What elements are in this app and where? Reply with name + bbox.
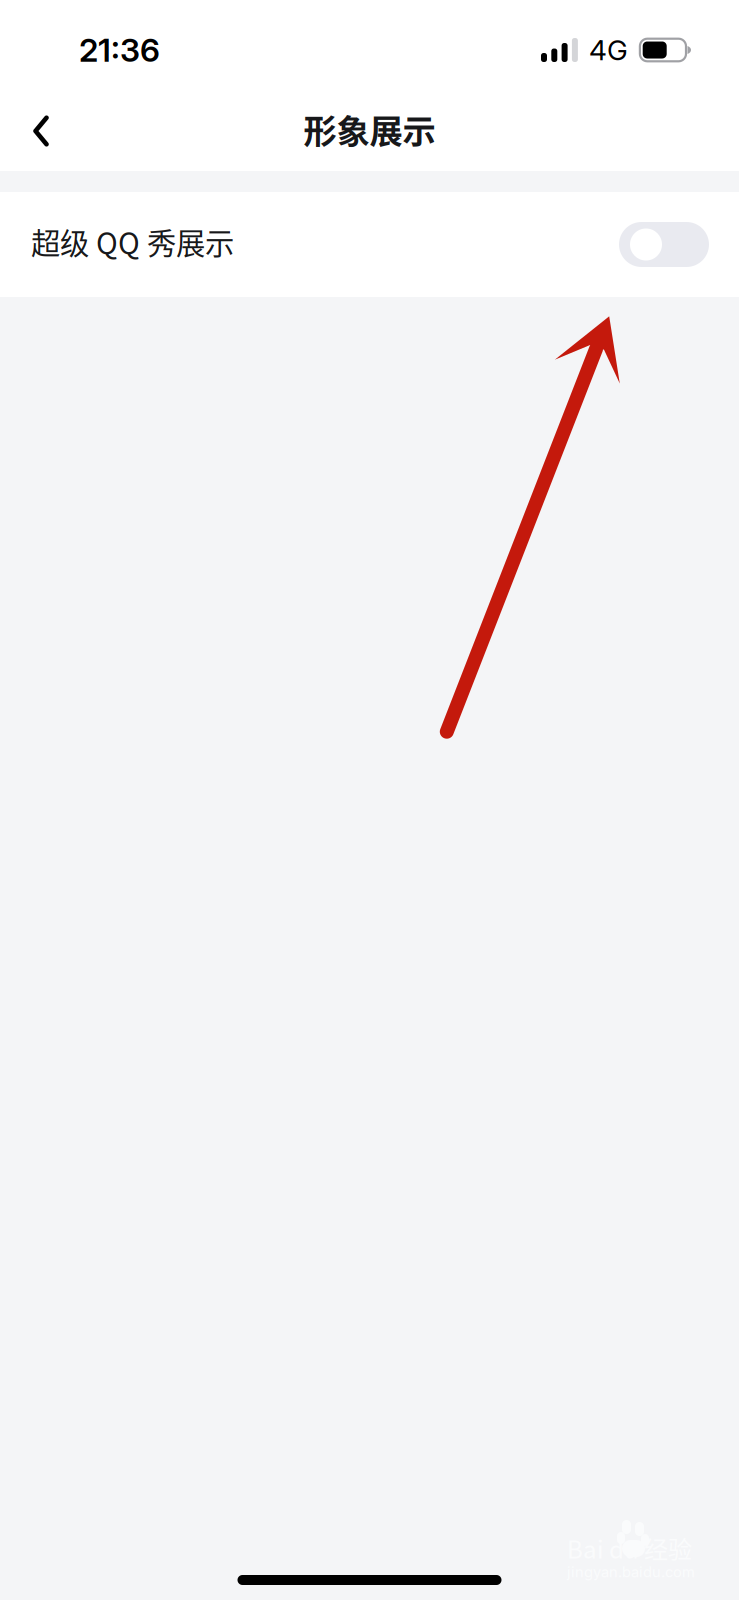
button[interactable]: Back: [9, 93, 73, 168]
staticText: 形象展示: [303, 105, 435, 153]
button[interactable]: 超级 QQ 秀展示: [619, 222, 709, 267]
staticText: 4G: [589, 33, 628, 67]
staticText: 21:36: [79, 31, 160, 69]
staticText: 超级 QQ 秀展示: [31, 220, 234, 263]
button[interactable]: 超级 QQ 秀展示: [0, 192, 739, 297]
